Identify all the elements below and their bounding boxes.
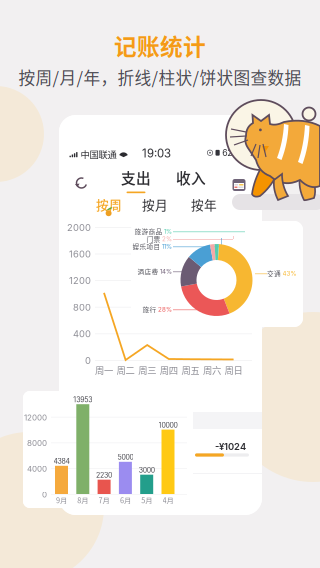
- staticText: 周三: [138, 363, 156, 377]
- staticText: 400: [73, 328, 91, 340]
- staticText: 周四: [160, 363, 178, 377]
- staticText: 按月: [142, 195, 168, 213]
- staticText: 门票: [146, 234, 160, 244]
- button[interactable]: 收入: [169, 168, 213, 192]
- staticText: 旅行: [142, 305, 156, 314]
- staticText: 按年: [191, 195, 217, 213]
- button[interactable]: 支出: [114, 168, 158, 192]
- staticText: 支出: [121, 167, 151, 188]
- staticText: 2%: [162, 235, 172, 243]
- button[interactable]: 按周: [92, 195, 126, 219]
- staticText: 娱乐项目: [132, 242, 160, 251]
- staticText: 周日: [225, 363, 243, 377]
- staticText: 1200: [69, 275, 91, 286]
- staticText: 3000: [139, 466, 155, 474]
- button[interactable]: 按年: [187, 195, 221, 219]
- staticText: 43%: [283, 270, 297, 277]
- staticText: 5月: [141, 495, 152, 505]
- staticText: 9月: [56, 495, 67, 505]
- staticText: 中国联通: [80, 147, 116, 161]
- staticText: 周一: [95, 363, 113, 377]
- staticText: 14%: [160, 268, 172, 275]
- staticText: 4384: [53, 457, 69, 465]
- staticText: 19:03: [142, 146, 171, 160]
- staticText: 62: [222, 147, 232, 158]
- staticText: 13953: [73, 395, 92, 404]
- staticText: 记账统计: [114, 29, 206, 62]
- staticText: 按周: [96, 195, 122, 213]
- button[interactable]: 返回: [67, 168, 93, 192]
- staticText: 7月: [99, 495, 110, 505]
- staticText: 10000: [158, 421, 177, 429]
- staticText: 按周/月/年，折线/柱状/饼状图查数据: [18, 65, 301, 89]
- staticText: 2000: [67, 222, 91, 233]
- button[interactable]: 按月: [138, 195, 172, 219]
- staticText: 0: [85, 355, 91, 366]
- staticText: 5000: [117, 453, 133, 461]
- staticText: 周六: [203, 363, 221, 377]
- staticText: 周五: [181, 363, 199, 377]
- button[interactable]: -¥1024: [59, 429, 262, 473]
- staticText: 800: [73, 302, 91, 313]
- staticText: 交通: [267, 269, 281, 278]
- staticText: 1%: [164, 228, 172, 235]
- staticText: 2230: [96, 471, 112, 479]
- staticText: 8000: [27, 438, 47, 448]
- button[interactable]: 日历: [227, 168, 251, 192]
- staticText: 1600: [69, 248, 91, 260]
- staticText: 0: [42, 490, 47, 499]
- staticText: 8月: [77, 495, 88, 505]
- staticText: 4月: [162, 495, 173, 505]
- staticText: 11%: [162, 243, 172, 250]
- staticText: 旅游商品: [134, 227, 162, 236]
- staticText: -¥1024: [215, 441, 246, 452]
- staticText: 6月: [120, 495, 131, 505]
- staticText: 28%: [158, 306, 172, 313]
- staticText: 酒店费: [137, 267, 158, 276]
- staticText: 12000: [24, 413, 47, 422]
- staticText: 收入: [176, 167, 206, 188]
- staticText: 周二: [117, 363, 135, 377]
- staticText: 4000: [27, 464, 47, 474]
